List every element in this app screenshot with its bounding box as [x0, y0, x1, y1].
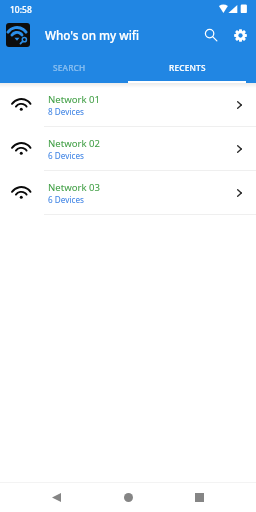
- staticText: RECENTS: [169, 62, 206, 73]
- button[interactable]: Network 02: [0, 127, 256, 170]
- button[interactable]: Recents: [184, 482, 215, 512]
- staticText: Who's on my wifi: [45, 27, 140, 43]
- staticText: Network 01: [48, 93, 101, 106]
- button[interactable]: Network 03: [0, 171, 256, 214]
- button[interactable]: Home: [113, 482, 144, 512]
- staticText: 6 Devices: [48, 194, 84, 205]
- staticText: Network 02: [48, 137, 101, 150]
- button[interactable]: Back: [41, 482, 72, 512]
- button[interactable]: Search: [198, 22, 224, 48]
- button[interactable]: SEARCH: [10, 54, 128, 83]
- button[interactable]: RECENTS: [128, 54, 246, 83]
- staticText: 10:58: [10, 4, 32, 16]
- button[interactable]: Settings: [227, 22, 253, 48]
- button[interactable]: Network 01: [0, 83, 256, 126]
- staticText: Network 03: [48, 181, 101, 194]
- staticText: 8 Devices: [48, 106, 84, 117]
- staticText: 6 Devices: [48, 150, 84, 161]
- staticText: SEARCH: [53, 62, 86, 73]
